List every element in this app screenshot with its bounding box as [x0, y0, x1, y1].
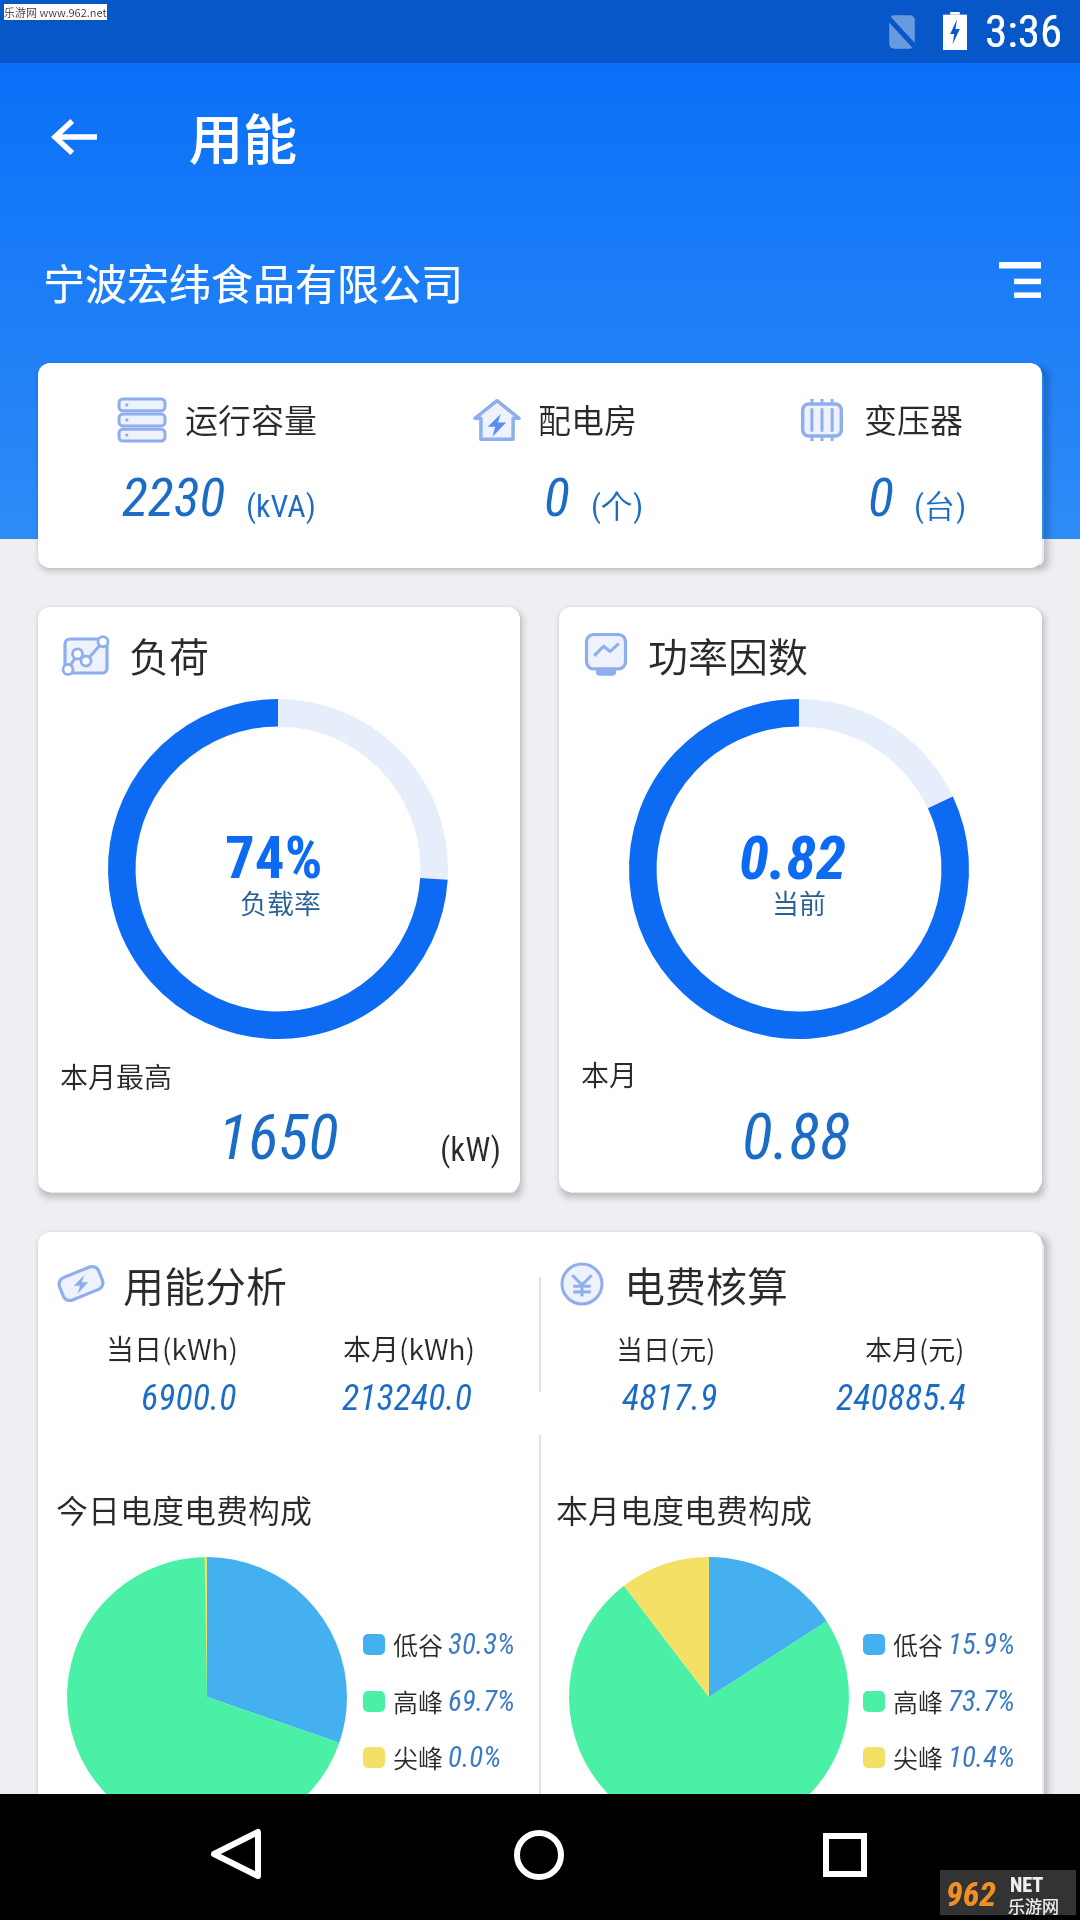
staticText: 当日(kWh) [106, 1328, 238, 1369]
button[interactable]: Menu [980, 240, 1060, 320]
button[interactable]: Recents [795, 1805, 895, 1905]
staticText: 变压器 [864, 395, 963, 443]
staticText: 尖峰 [893, 1739, 944, 1775]
staticText: 本月 [581, 1054, 638, 1095]
staticText: 乐游网 www.962.net [4, 4, 107, 20]
staticText: (kVA) [246, 487, 316, 525]
staticText: 30.3% [448, 1627, 515, 1661]
staticText: 4817.9 [622, 1377, 718, 1419]
button[interactable]: 负荷 [38, 607, 520, 1192]
staticText: 本月(元) [865, 1329, 965, 1368]
staticText: 功率因数 [648, 626, 808, 684]
staticText: 今日电度电费构成 [56, 1486, 313, 1532]
button[interactable]: 运行容量 配电房 变压器 [38, 363, 1042, 568]
staticText: 用能分析 [123, 1254, 287, 1313]
staticText: 962 [946, 1874, 997, 1914]
staticText: 高峰 [893, 1683, 944, 1719]
staticText: 240885.4 [836, 1377, 966, 1419]
button[interactable]: Back [36, 98, 114, 176]
button[interactable]: Back [186, 1804, 286, 1904]
staticText: 74% [225, 823, 323, 892]
staticText: 配电房 [538, 395, 637, 443]
staticText: 本月电度电费构成 [556, 1486, 813, 1532]
staticText: 当前 [772, 883, 826, 922]
staticText: 乐游网 [1008, 1893, 1059, 1918]
staticText: 高峰 [393, 1683, 444, 1719]
staticText: 0.82 [739, 822, 847, 893]
staticText: (kW) [440, 1130, 502, 1169]
staticText: 0.0% [448, 1740, 502, 1774]
staticText: 负载率 [240, 883, 321, 922]
staticText: 15.9% [948, 1627, 1015, 1661]
staticText: 宁波宏纬食品有限公司 [43, 251, 464, 312]
staticText: 3:36 [985, 5, 1063, 58]
staticText: 73.7% [948, 1684, 1015, 1718]
staticText: 69.7% [448, 1684, 515, 1718]
staticText: 运行容量 [185, 395, 317, 443]
staticText: 尖峰 [393, 1739, 444, 1775]
staticText: 电费核算 [624, 1254, 788, 1313]
staticText: NET [1010, 1873, 1044, 1896]
staticText: 低谷 [893, 1626, 944, 1662]
staticText: 0 [544, 466, 570, 529]
staticText: 负荷 [129, 626, 209, 684]
staticText: 低谷 [393, 1626, 444, 1662]
staticText: 0.88 [742, 1100, 851, 1175]
button[interactable]: 功率因数 [559, 607, 1042, 1192]
staticText: 本月最高 [60, 1056, 173, 1097]
staticText: 1650 [218, 1101, 339, 1175]
staticText: 0 [868, 466, 894, 529]
staticText: 10.4% [948, 1740, 1015, 1774]
button[interactable]: 用能分析 电费核算 [38, 1232, 1042, 1832]
staticText: (台) [914, 486, 967, 526]
staticText: 213240.0 [342, 1377, 472, 1419]
staticText: 6900.0 [141, 1377, 237, 1419]
staticText: 本月(kWh) [343, 1328, 475, 1369]
button[interactable]: Home [489, 1805, 589, 1905]
staticText: 用能 [189, 97, 297, 175]
staticText: 2230 [122, 466, 226, 529]
staticText: 当日(元) [616, 1329, 716, 1368]
staticText: (个) [591, 486, 644, 526]
